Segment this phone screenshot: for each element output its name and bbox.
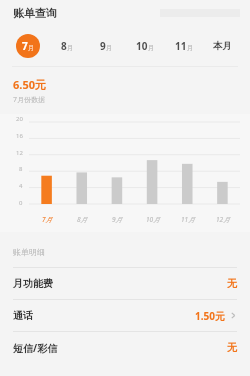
staticText: 7 bbox=[22, 39, 28, 53]
staticText: 账单明细 bbox=[13, 247, 45, 257]
staticText: 7月份数据 bbox=[13, 95, 46, 105]
staticText: 10 bbox=[136, 39, 148, 53]
staticText: 无 bbox=[227, 277, 237, 290]
button[interactable]: 8 bbox=[47, 25, 86, 66]
button[interactable]: 月功能费 bbox=[0, 268, 250, 299]
staticText: 短信/彩信 bbox=[13, 341, 58, 355]
staticText: 8 bbox=[19, 165, 23, 173]
staticText: 10月 bbox=[146, 215, 160, 224]
staticText: 12 bbox=[16, 149, 23, 157]
button[interactable]: 通话 bbox=[0, 300, 250, 331]
staticText: 月 bbox=[67, 44, 73, 52]
staticText: 1.50元 bbox=[195, 309, 225, 323]
staticText: 0 bbox=[19, 199, 23, 207]
button[interactable]: 短信/彩信 bbox=[0, 332, 250, 363]
staticText: 月 bbox=[187, 44, 193, 52]
staticText: 月 bbox=[28, 44, 34, 52]
staticText: 账单查询 bbox=[13, 6, 57, 20]
staticText: 11 bbox=[175, 39, 187, 53]
staticText: 12月 bbox=[216, 215, 230, 224]
staticText: 8月 bbox=[77, 215, 88, 224]
staticText: 月 bbox=[106, 44, 112, 52]
button[interactable]: 10 bbox=[125, 25, 164, 66]
staticText: 11月 bbox=[181, 215, 195, 224]
staticText: 6.50元 bbox=[13, 77, 46, 92]
staticText: 月 bbox=[148, 44, 154, 52]
staticText: 9 bbox=[100, 39, 106, 53]
staticText: 9月 bbox=[112, 215, 123, 224]
staticText: 7月 bbox=[42, 215, 53, 224]
staticText: 无 bbox=[227, 341, 237, 354]
staticText: 20 bbox=[16, 115, 23, 123]
button[interactable]: 本月 bbox=[203, 25, 242, 66]
staticText: 4 bbox=[19, 182, 23, 190]
button[interactable]: 9 bbox=[86, 25, 125, 66]
other: View call details bbox=[230, 312, 237, 319]
staticText: 本月 bbox=[213, 40, 232, 52]
button[interactable]: 11 bbox=[164, 25, 203, 66]
staticText: 月功能费 bbox=[13, 277, 53, 290]
staticText: 8 bbox=[61, 39, 67, 53]
staticText: 16 bbox=[16, 132, 23, 140]
button[interactable]: 7 bbox=[8, 25, 47, 66]
staticText: 通话 bbox=[13, 309, 33, 322]
